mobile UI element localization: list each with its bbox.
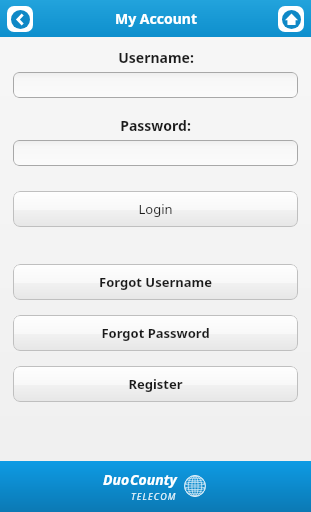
staticText: Duo bbox=[103, 470, 130, 489]
button[interactable]: Forgot Username bbox=[13, 264, 298, 300]
button[interactable]: Back bbox=[7, 6, 33, 32]
staticText: Forgot Username bbox=[99, 273, 212, 291]
staticText: Register bbox=[128, 375, 183, 393]
button[interactable]: Login bbox=[13, 191, 298, 227]
button[interactable]: Forgot Password bbox=[13, 315, 298, 351]
button[interactable]: Register bbox=[13, 366, 298, 402]
staticText: County bbox=[130, 470, 177, 489]
staticText: Password: bbox=[120, 116, 191, 135]
staticText: Username: bbox=[118, 48, 194, 67]
staticText: Login bbox=[138, 200, 173, 218]
staticText: Forgot Password bbox=[101, 324, 210, 342]
staticText: TELECOM bbox=[131, 490, 177, 502]
button[interactable]: Text input field bbox=[13, 72, 298, 98]
staticText: My Account bbox=[115, 9, 197, 28]
button[interactable]: Home bbox=[278, 6, 304, 32]
button[interactable]: Text input field bbox=[13, 140, 298, 166]
